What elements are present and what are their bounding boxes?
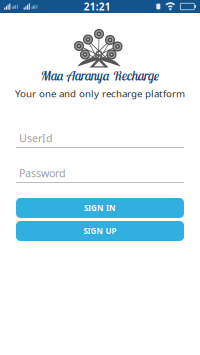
staticText: 21:21	[84, 0, 111, 13]
staticText: all	[11, 2, 18, 11]
button[interactable]: SIGN IN	[16, 198, 184, 218]
staticText: Password	[19, 166, 66, 180]
staticText: SIGN IN	[84, 203, 116, 213]
staticText: all	[31, 2, 38, 11]
staticText: Your one and only recharge platform	[15, 87, 185, 100]
staticText: SIGN UP	[83, 226, 116, 236]
staticText: Maa Aaranya Recharge	[41, 67, 159, 84]
button[interactable]: SIGN UP	[16, 221, 184, 241]
staticText: UserId	[19, 131, 53, 145]
